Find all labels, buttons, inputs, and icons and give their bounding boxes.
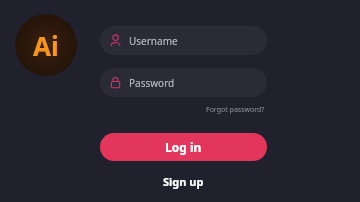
button[interactable]: Forgot password? bbox=[204, 104, 267, 116]
staticText: Sign up bbox=[163, 174, 204, 189]
staticText: Ai bbox=[33, 28, 59, 63]
staticText: Password bbox=[129, 76, 175, 90]
button[interactable]: Log in bbox=[100, 133, 267, 161]
button[interactable]: Username bbox=[100, 26, 267, 55]
staticText: Log in bbox=[165, 139, 202, 155]
staticText: Forgot password? bbox=[206, 105, 265, 115]
staticText: Username bbox=[129, 34, 178, 48]
other: Ai logo bbox=[15, 14, 77, 76]
button[interactable]: Password bbox=[100, 68, 267, 97]
button[interactable]: Sign up bbox=[157, 172, 210, 191]
